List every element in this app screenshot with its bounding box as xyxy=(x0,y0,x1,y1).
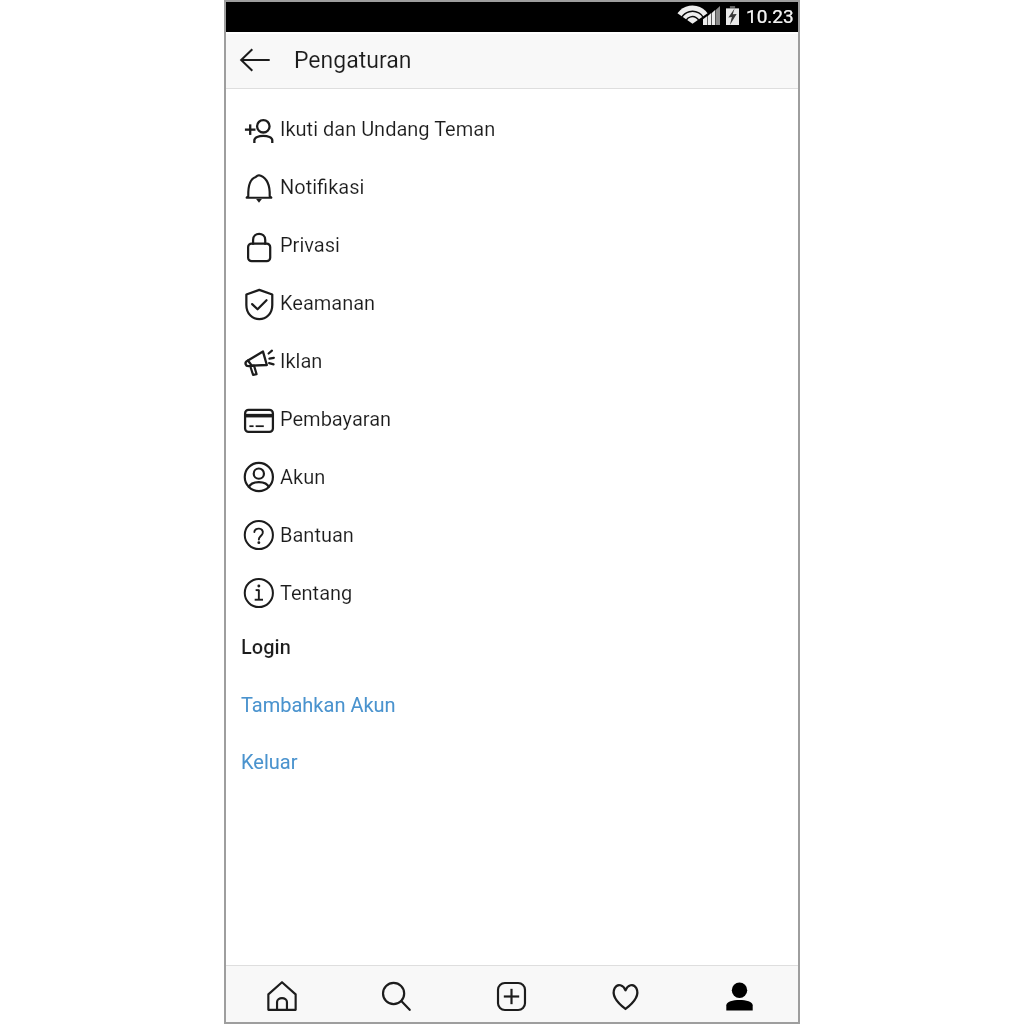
button[interactable]: Akun xyxy=(226,448,798,506)
staticText: Akun xyxy=(280,465,326,488)
button[interactable]: Home xyxy=(226,966,341,1022)
button[interactable]: Search xyxy=(341,966,456,1022)
staticText: 10.23 xyxy=(746,5,794,27)
staticText: Login xyxy=(241,635,291,658)
staticText: Tentang xyxy=(280,581,353,604)
button[interactable]: Tentang xyxy=(226,564,798,622)
button[interactable]: Pembayaran xyxy=(226,390,798,448)
button[interactable]: Privasi xyxy=(226,216,798,274)
button[interactable]: Create xyxy=(456,966,570,1022)
staticText: Notifikasi xyxy=(280,175,365,198)
staticText: Pembayaran xyxy=(280,407,392,430)
staticText: Bantuan xyxy=(280,523,354,546)
button[interactable]: Iklan xyxy=(226,332,798,390)
staticText: Keamanan xyxy=(280,291,376,314)
staticText: Ikuti dan Undang Teman xyxy=(280,117,496,140)
button[interactable]: Back xyxy=(230,35,280,85)
staticText: Privasi xyxy=(280,233,340,256)
button[interactable]: Ikuti dan Undang Teman xyxy=(226,100,798,158)
button[interactable]: Activity xyxy=(570,966,684,1022)
button[interactable]: Tambahkan Akun xyxy=(226,676,798,734)
button[interactable]: Bantuan xyxy=(226,506,798,564)
staticText: Tambahkan Akun xyxy=(241,693,396,716)
button[interactable]: Keluar xyxy=(226,733,798,791)
staticText: Pengaturan xyxy=(294,47,412,74)
staticText: Iklan xyxy=(280,349,323,372)
button[interactable]: Keamanan xyxy=(226,274,798,332)
button[interactable]: Profile xyxy=(684,966,798,1022)
staticText: Keluar xyxy=(241,750,298,773)
button[interactable]: Notifikasi xyxy=(226,158,798,216)
